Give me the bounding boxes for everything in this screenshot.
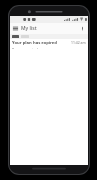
staticText: Your plan has expired — [12, 40, 58, 46]
staticText: Renew now to keep access — [12, 47, 57, 49]
staticText: 11:42 am — [71, 40, 86, 45]
button[interactable]: Your plan has expired — [10, 39, 88, 50]
button[interactable]: Today section — [10, 34, 88, 39]
staticText: My list — [21, 25, 37, 32]
button[interactable]: More options — [77, 23, 88, 34]
button[interactable]: Open navigation menu — [10, 23, 21, 34]
